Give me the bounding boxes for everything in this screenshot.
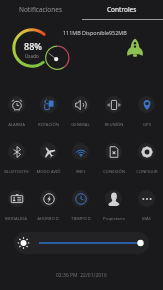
button[interactable]: Propietario	[97, 190, 130, 224]
staticText: TIEMPO D	[71, 216, 91, 222]
button[interactable]: TIEMPO D	[64, 190, 97, 224]
staticText: GENERAL	[71, 122, 90, 128]
button[interactable]: MÁS	[130, 190, 163, 224]
button[interactable]: ROTACIÓN	[32, 96, 64, 130]
staticText: 952MB	[109, 29, 127, 36]
staticText: 02:36 PM 22/01/2016	[56, 272, 107, 279]
button[interactable]: MODO AVIÓ	[32, 143, 64, 177]
staticText: Controles	[107, 5, 137, 14]
button[interactable]: Notificaciones	[0, 0, 81, 19]
button[interactable]: CONEXIÓN	[97, 143, 130, 177]
button[interactable]: WIFI	[64, 143, 97, 177]
staticText: BLUETOOTH	[4, 169, 29, 175]
button[interactable]: MODALIDA	[0, 190, 32, 224]
button[interactable]: Controles	[81, 0, 163, 19]
button[interactable]: REUNIÓN	[97, 96, 130, 130]
staticText: MODO AVIÓ	[36, 169, 61, 175]
staticText: AHORRO D	[37, 216, 59, 222]
staticText: ALARMA	[8, 122, 25, 128]
staticText: Notificaciones	[19, 5, 63, 14]
staticText: 111MB Disponible	[63, 29, 109, 36]
staticText: Propietario	[103, 216, 125, 222]
staticText: MÁS	[142, 216, 151, 222]
staticText: ROTACIÓN	[38, 122, 59, 128]
staticText: MODALIDA	[5, 216, 27, 222]
button[interactable]: Brillo	[14, 232, 149, 254]
staticText: GPS	[143, 122, 151, 128]
staticText: CONEXIÓN	[103, 169, 125, 175]
button[interactable]: CONFIGUR	[130, 143, 163, 177]
button[interactable]: GPS	[130, 96, 163, 130]
button[interactable]: ALARMA	[0, 96, 32, 130]
staticText: REUNIÓN	[104, 122, 124, 128]
staticText: 88%	[24, 40, 42, 52]
button[interactable]: AHORRO D	[32, 190, 64, 224]
staticText: WIFI	[76, 169, 85, 175]
button[interactable]: GENERAL	[64, 96, 97, 130]
staticText: Usado	[25, 53, 39, 59]
button[interactable]: BLUETOOTH	[0, 143, 32, 177]
staticText: CONFIGUR	[136, 169, 158, 175]
